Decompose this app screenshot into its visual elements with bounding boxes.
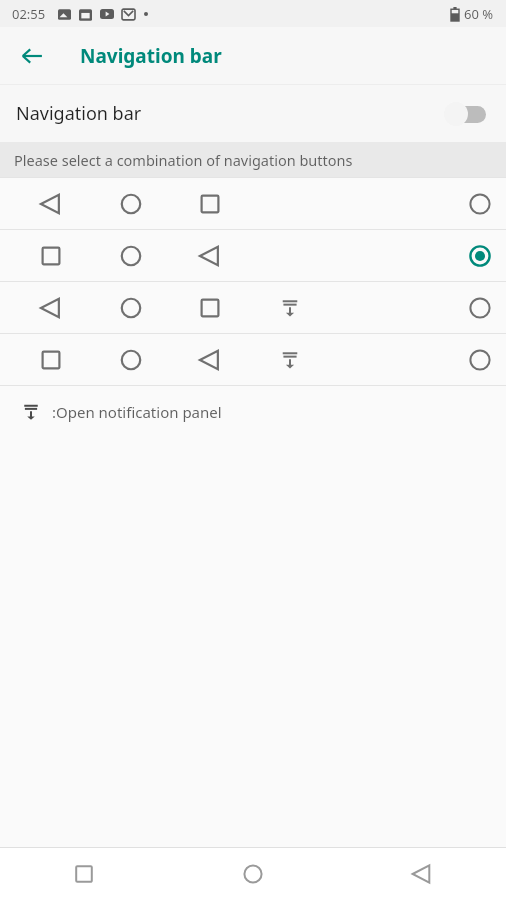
button[interactable]: Navigation button combination option xyxy=(0,230,506,282)
staticText: :Open notification panel xyxy=(52,402,222,422)
button[interactable]: Navigation button combination option xyxy=(0,282,506,334)
staticText: 02:55 xyxy=(12,5,46,23)
button[interactable]: Back xyxy=(14,38,50,74)
button[interactable]: Home xyxy=(168,848,337,900)
button[interactable]: Navigation bar xyxy=(0,85,506,142)
button[interactable]: Back xyxy=(337,848,506,900)
staticText: Navigation bar xyxy=(80,43,222,69)
staticText: Navigation bar xyxy=(16,101,142,126)
button[interactable]: Navigation button combination option xyxy=(0,334,506,386)
button[interactable]: Recent apps xyxy=(0,848,168,900)
staticText: Please select a combination of navigatio… xyxy=(14,150,353,170)
staticText: 60 % xyxy=(464,5,494,23)
button[interactable]: Navigation button combination option xyxy=(0,178,506,230)
